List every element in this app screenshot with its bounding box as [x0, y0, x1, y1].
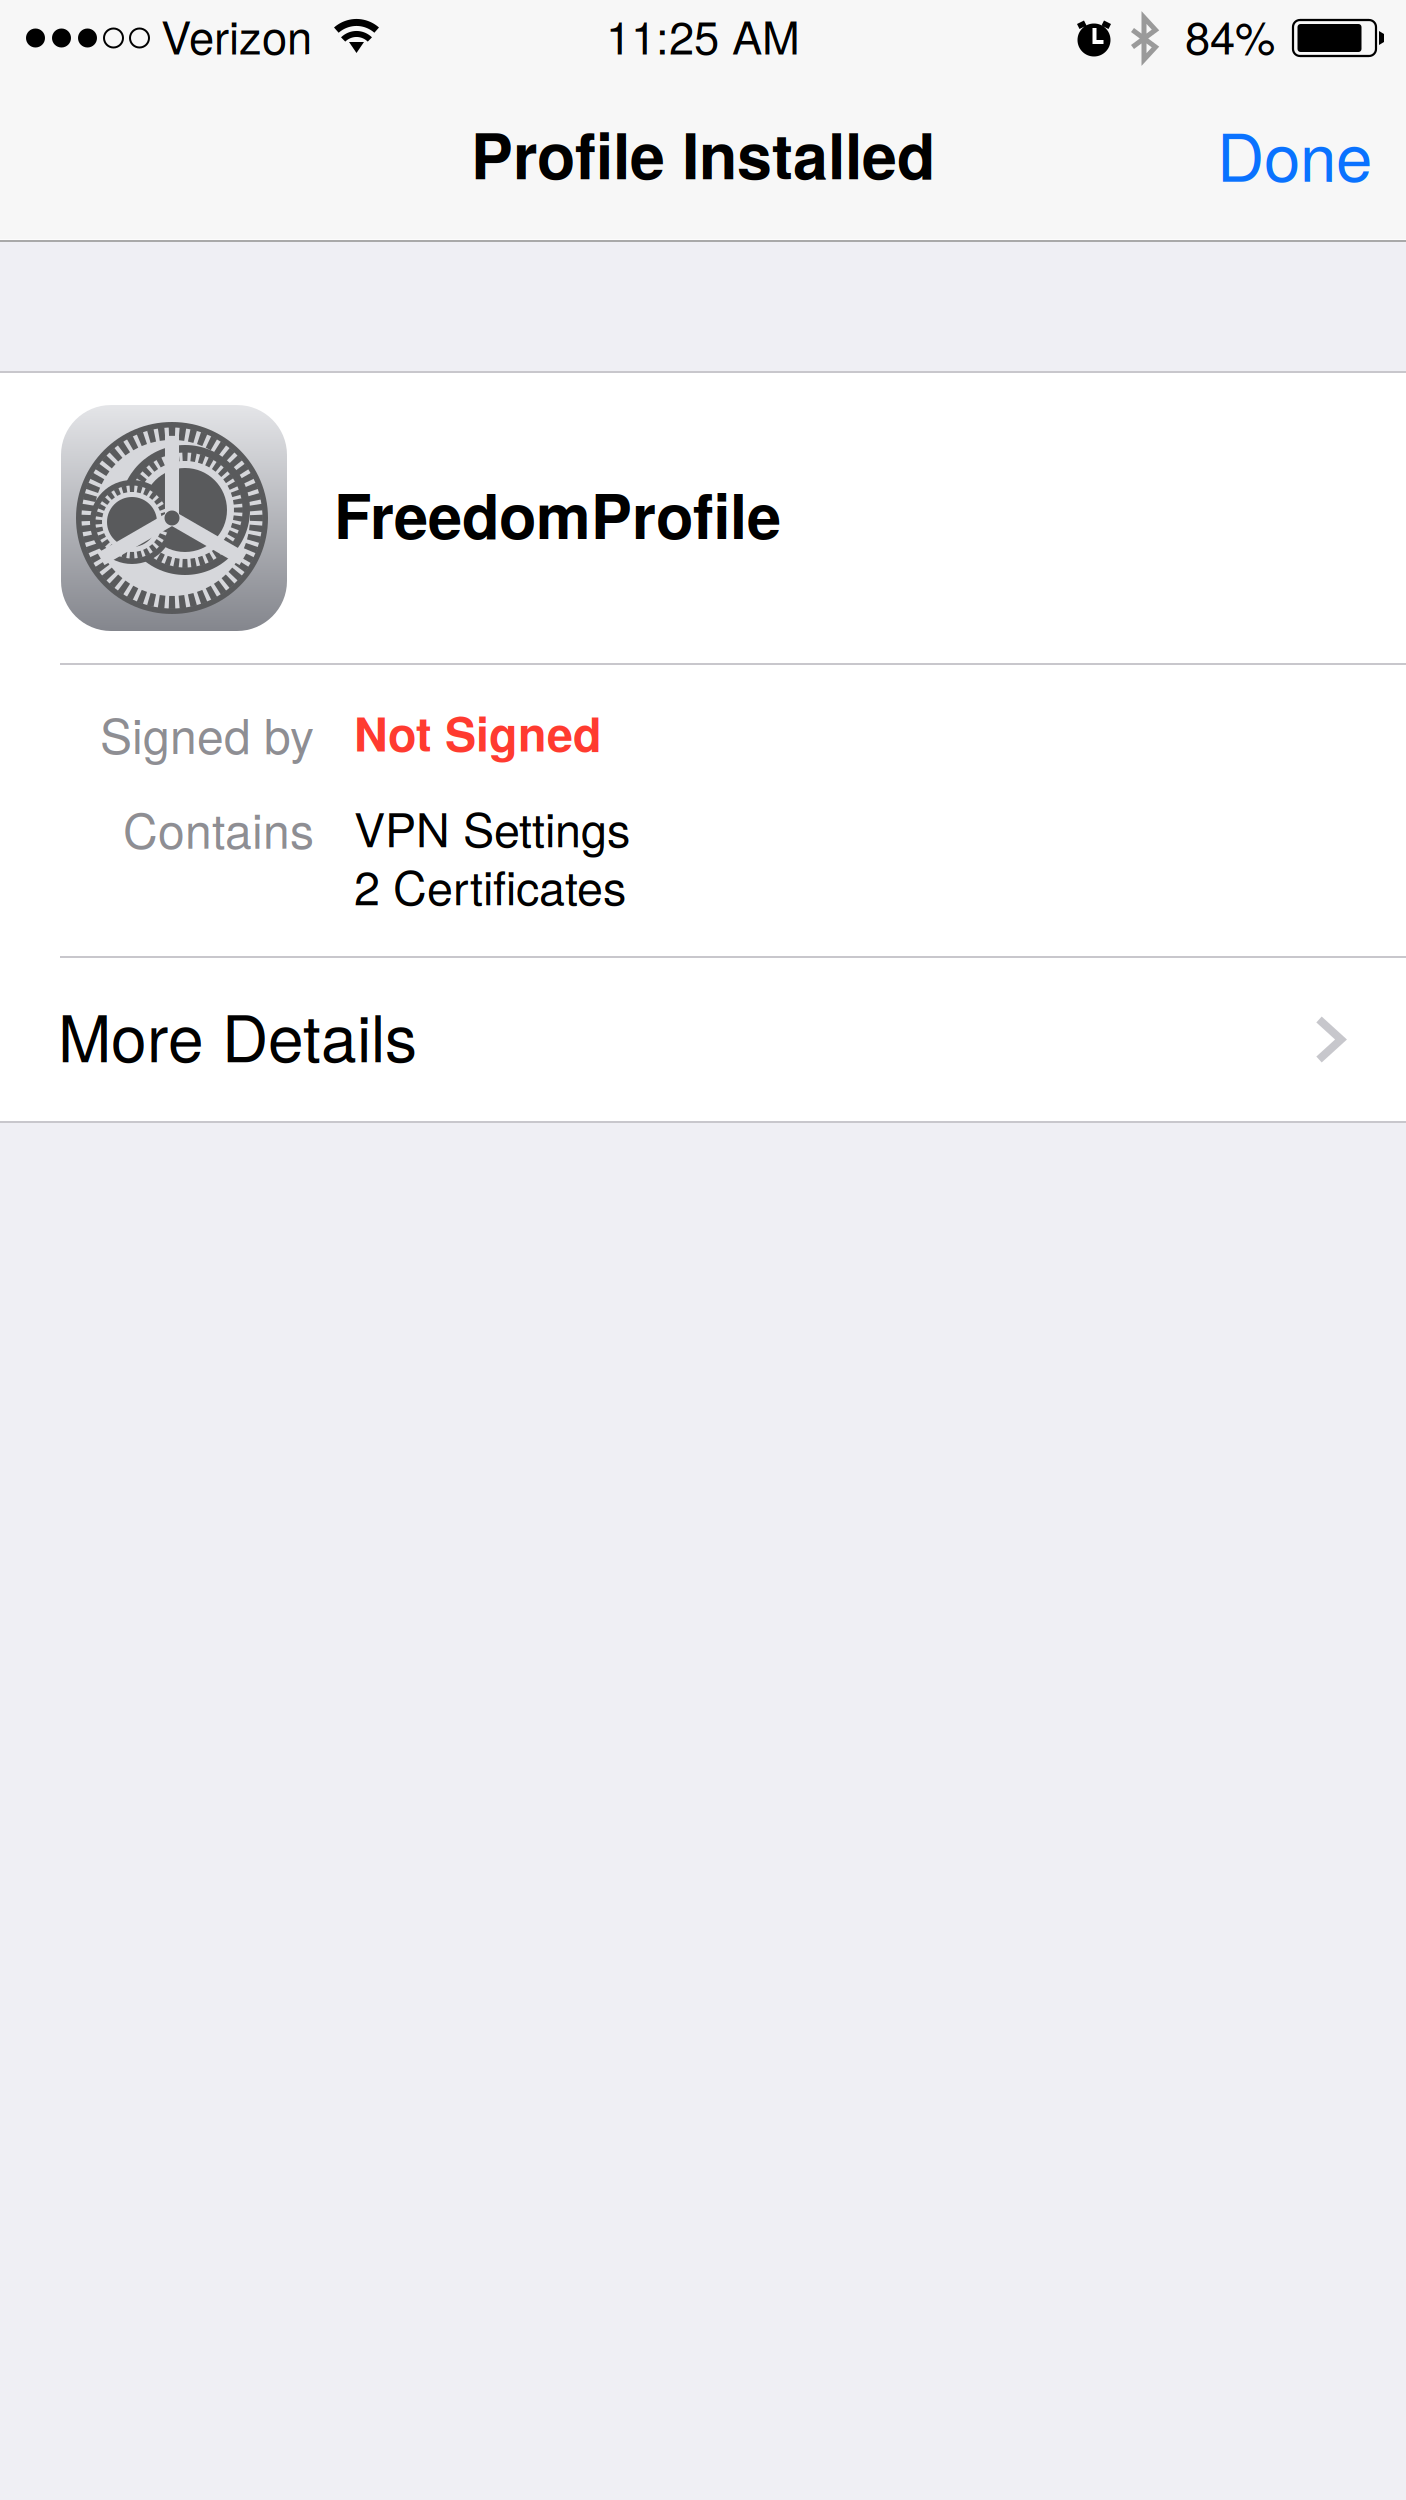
staticText: Verizon: [161, 2, 312, 67]
staticText: More Details: [58, 989, 417, 1080]
staticText: Profile Installed: [471, 109, 935, 198]
staticText: Done: [1217, 107, 1372, 200]
staticText: VPN Settings: [354, 794, 630, 860]
staticText: 84%: [1185, 2, 1275, 67]
staticText: Contains: [123, 794, 314, 862]
staticText: FreedomProfile: [334, 470, 781, 558]
staticText: 2 Certificates: [354, 852, 626, 918]
button[interactable]: Done: [1200, 81, 1389, 234]
staticText: Not Signed: [354, 699, 602, 766]
button[interactable]: More Details: [0, 958, 1406, 1121]
staticText: 11:25 AM: [606, 2, 800, 67]
staticText: Signed by: [100, 699, 314, 768]
